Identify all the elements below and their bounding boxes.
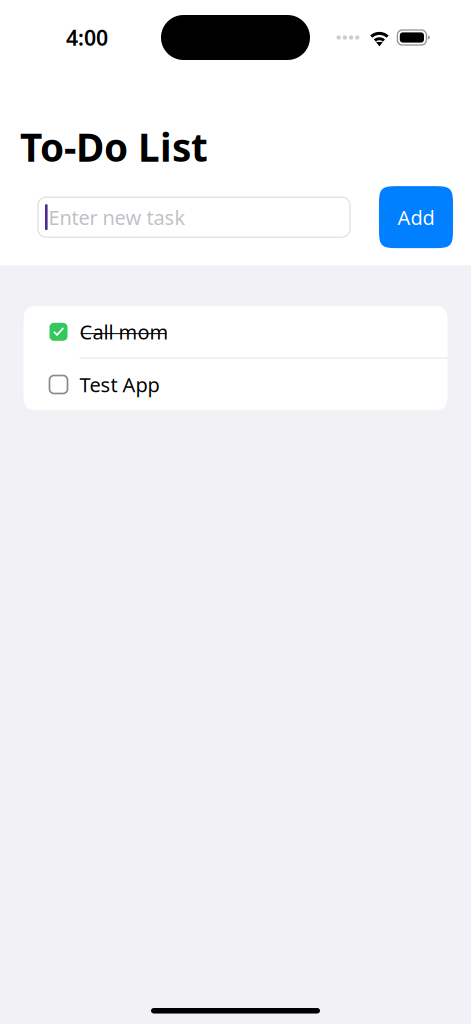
staticText: Test App — [79, 371, 159, 398]
staticText: 4:00 — [66, 23, 108, 52]
staticText: To-Do List — [20, 121, 208, 172]
staticText: Enter new task — [49, 204, 186, 230]
button[interactable]: Enter new task — [38, 197, 350, 237]
staticText: Call mom — [79, 318, 168, 345]
button[interactable]: Call mom — [23, 306, 447, 357]
staticText: Add — [397, 204, 434, 230]
button[interactable]: Add — [379, 186, 453, 248]
button[interactable]: Test App — [23, 359, 447, 410]
